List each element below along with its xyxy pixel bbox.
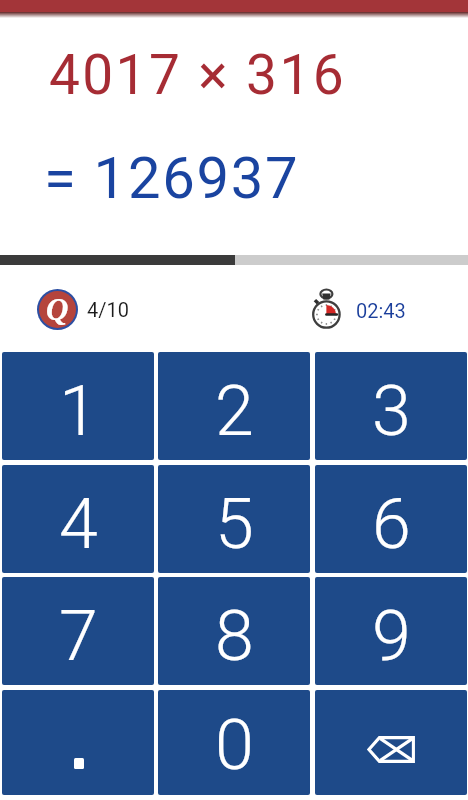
staticText: 0 bbox=[215, 704, 254, 786]
button[interactable]: 9 bbox=[315, 577, 467, 685]
button[interactable]: 0 bbox=[158, 690, 310, 795]
staticText: = 126937 bbox=[44, 144, 300, 212]
button[interactable]: 5 bbox=[158, 465, 310, 573]
staticText: 3 bbox=[372, 370, 411, 452]
button[interactable]: 8 bbox=[158, 577, 310, 685]
button[interactable]: 7 bbox=[2, 577, 154, 685]
staticText: 1 bbox=[59, 370, 98, 452]
staticText: 02:43 bbox=[356, 299, 406, 322]
staticText: 8 bbox=[215, 595, 254, 677]
staticText: 9 bbox=[372, 595, 411, 677]
button[interactable]: 6 bbox=[315, 465, 467, 573]
staticText: Q bbox=[46, 292, 69, 326]
staticText: 4/10 bbox=[87, 298, 129, 321]
button[interactable]: 4 bbox=[2, 465, 154, 573]
staticText: 4017 × 316 bbox=[49, 43, 347, 107]
staticText: 7 bbox=[59, 595, 98, 677]
staticText: 2 bbox=[215, 370, 254, 452]
button[interactable]: 3 bbox=[315, 352, 467, 460]
staticText: 5 bbox=[215, 483, 254, 565]
button[interactable] bbox=[315, 690, 467, 795]
button[interactable]: 2 bbox=[158, 352, 310, 460]
staticText: 6 bbox=[372, 483, 411, 565]
button[interactable]: 1 bbox=[2, 352, 154, 460]
staticText: 4 bbox=[59, 483, 98, 565]
button[interactable] bbox=[2, 690, 154, 795]
